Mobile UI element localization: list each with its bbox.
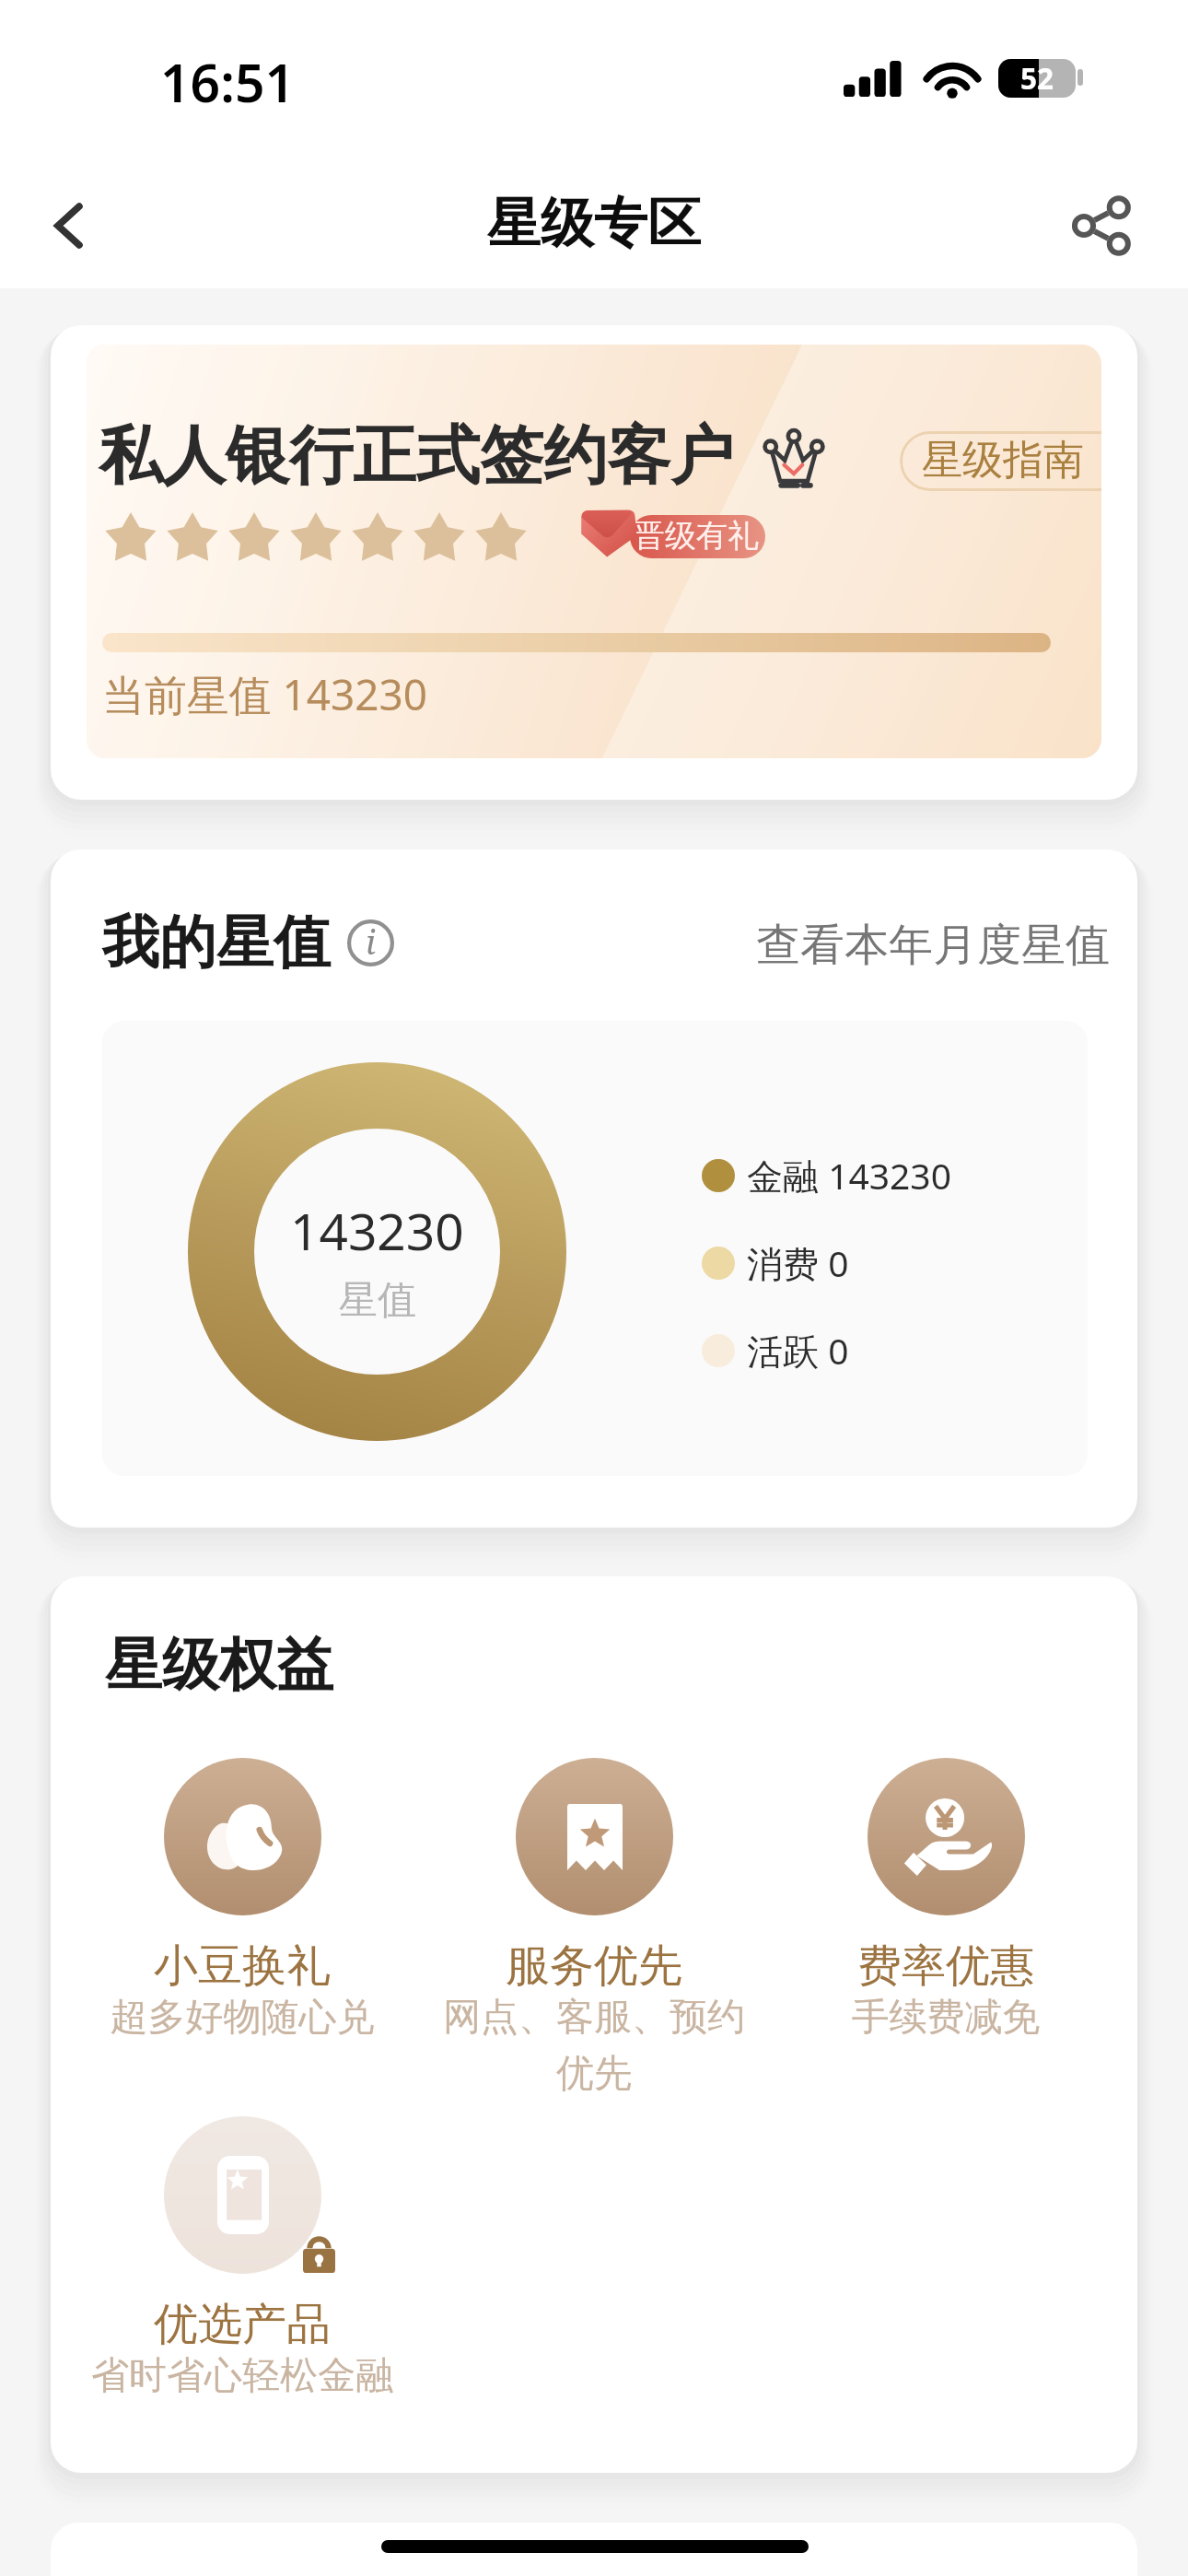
staticText: 金融 143230 [747,1151,951,1200]
staticText: 当前星值 143230 [102,665,427,723]
staticText: 手续费减免 [770,1994,1122,2042]
button[interactable]: Share [1043,168,1159,284]
staticText: 私人银行正式签约客户 [99,416,734,497]
staticText: 超多好物随心兑 [66,1994,418,2042]
staticText: 小豆换礼 [154,1938,331,1994]
staticText: 星值 [339,1276,416,1325]
button[interactable]: 费率优惠 [770,1758,1122,2042]
staticText: 星级权益 [105,1629,333,1701]
button[interactable]: Back [10,168,126,284]
staticText: 52 [1020,59,1054,97]
button[interactable]: 服务优先 [418,1758,770,2097]
button[interactable]: 优选产品 [66,2116,418,2400]
staticText: i [366,919,376,965]
button[interactable]: 小豆换礼 [66,1758,418,2042]
staticText: 星级指南 [922,435,1084,486]
staticText: 优选产品 [154,2297,331,2352]
staticText: 我的星值 [102,907,331,978]
staticText: 省时省心轻松金融 [66,2352,418,2400]
staticText: 16:51 [160,46,296,118]
button[interactable]: 查看本年月度星值 [756,918,1110,973]
button[interactable]: 星级指南 [900,431,1101,491]
staticText: 143230 [290,1196,464,1265]
staticText: 消费 0 [747,1238,849,1287]
staticText: 网点、客服、预约 优先 [418,1994,770,2097]
staticText: 晋级有礼 [634,516,759,556]
staticText: 星级专区 [487,190,701,257]
staticText: 费率优惠 [857,1938,1034,1994]
staticText: 活跃 0 [747,1326,849,1375]
staticText: 服务优先 [506,1938,682,1994]
